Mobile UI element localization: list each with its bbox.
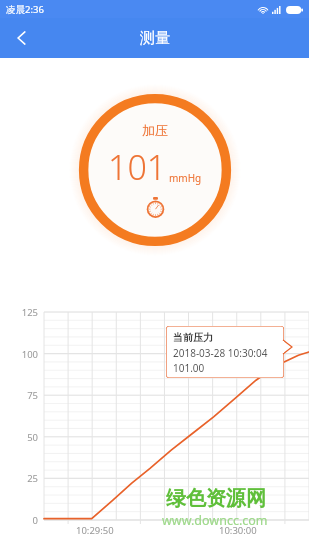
staticText: 50 xyxy=(0,431,38,444)
staticText: 10:30:00 xyxy=(219,524,257,537)
staticText: www.downcc.com xyxy=(162,512,268,529)
staticText: 凌晨2:36 xyxy=(6,3,44,16)
staticText: 125 xyxy=(0,306,38,319)
staticText: 测量 xyxy=(140,29,170,48)
staticText: 加压 xyxy=(142,122,168,138)
staticText: 101 xyxy=(108,144,167,190)
button[interactable]: Back xyxy=(0,18,44,58)
staticText: 101.00 xyxy=(173,361,205,375)
staticText: 当前压力 xyxy=(173,331,213,344)
staticText: 0 xyxy=(0,514,38,527)
staticText: 100 xyxy=(0,348,38,361)
staticText: 25 xyxy=(0,472,38,485)
staticText: 绿色资源网 xyxy=(166,486,266,511)
staticText: 75 xyxy=(0,389,38,402)
staticText: 10:29:50 xyxy=(76,524,114,537)
staticText: mmHg xyxy=(169,171,202,185)
button[interactable]: 当前压力 xyxy=(166,326,284,378)
staticText: 2018-03-28 10:30:04 xyxy=(173,346,268,360)
